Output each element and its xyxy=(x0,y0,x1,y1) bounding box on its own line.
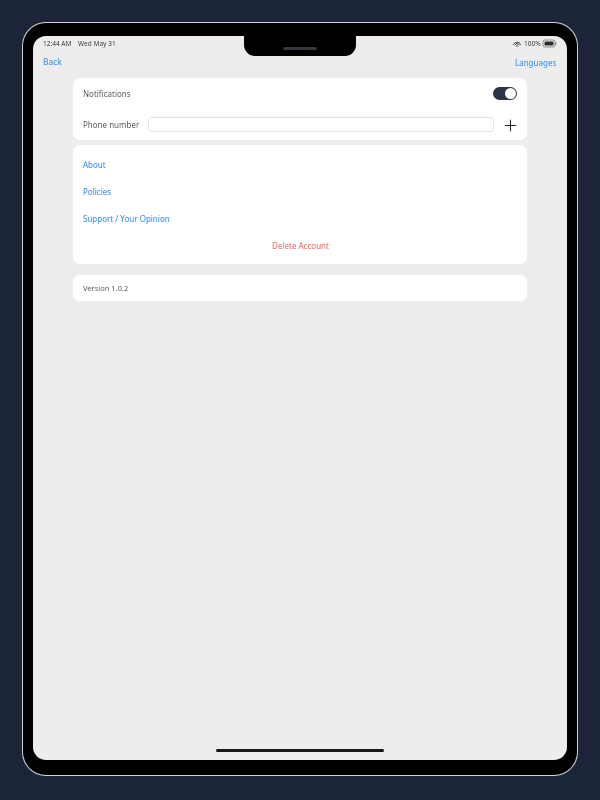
button[interactable]: Delete Account xyxy=(73,232,527,258)
staticText: Policies xyxy=(83,186,112,197)
button[interactable]: Notifications xyxy=(73,78,527,109)
staticText: Wed May 31 xyxy=(78,39,116,48)
button[interactable]: Languages xyxy=(509,54,563,71)
button[interactable]: Support / Your Opinion xyxy=(73,205,527,232)
button[interactable] xyxy=(148,117,494,132)
button[interactable]: Version 1.0.2 xyxy=(73,275,527,301)
staticText: Languages xyxy=(515,57,557,68)
button[interactable]: Back xyxy=(37,53,68,71)
staticText: 12:44 AM xyxy=(43,39,72,48)
staticText: Back xyxy=(43,56,62,68)
staticText: Support / Your Opinion xyxy=(83,213,170,224)
button[interactable]: Notifications toggle xyxy=(493,87,517,100)
staticText: Delete Account xyxy=(272,240,329,251)
button[interactable]: About xyxy=(73,151,527,178)
staticText: Notifications xyxy=(83,88,131,99)
staticText: 100% xyxy=(524,39,541,48)
button[interactable]: Policies xyxy=(73,178,527,205)
staticText: Phone number xyxy=(83,119,140,130)
staticText: Version 1.0.2 xyxy=(83,283,129,293)
staticText: About xyxy=(83,159,106,170)
button[interactable]: Add phone number xyxy=(501,116,519,134)
